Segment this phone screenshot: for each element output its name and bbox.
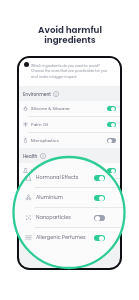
button[interactable]: Hormonal Effects (14, 168, 125, 187)
staticText: Avoid harmful ingredients (38, 24, 102, 46)
staticText: Palm Oil (31, 122, 49, 128)
staticText: Allergenic Perfumes (31, 216, 73, 222)
staticText: Health (23, 153, 38, 159)
button[interactable]: More information about Health (40, 153, 46, 159)
staticText: Silicone & Siloxane (31, 106, 70, 112)
button[interactable]: Palm Oil (19, 117, 120, 132)
staticText: Aluminium (31, 184, 54, 190)
staticText: Allergenic Perfumes (36, 234, 86, 241)
button[interactable]: Microplastics (19, 133, 120, 148)
staticText: Hormonal Effects (36, 174, 79, 181)
staticText: Hormonal Effects (31, 168, 67, 174)
button[interactable]: Aluminium (14, 188, 125, 207)
button[interactable]: Nanoparticles (19, 195, 120, 210)
staticText: Microplastics (31, 138, 59, 144)
button[interactable]: More information about Environment (53, 91, 59, 97)
button[interactable]: Nanoparticles (14, 208, 125, 227)
button[interactable]: Silicone & Siloxane (19, 101, 120, 116)
staticText: Nanoparticles (36, 214, 71, 221)
staticText: Aluminium (36, 194, 63, 201)
button[interactable]: Allergenic Perfumes (14, 228, 125, 247)
button[interactable]: Allergenic Perfumes (19, 211, 120, 226)
staticText: Environment (23, 91, 51, 97)
staticText: Which ingredients do you want to avoid? … (31, 63, 108, 79)
button[interactable]: Aluminium (19, 179, 120, 194)
button[interactable]: Hormonal Effects (19, 163, 120, 178)
